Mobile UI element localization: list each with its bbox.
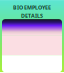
staticText: DETAILS — [21, 12, 43, 19]
staticText: BIO EMPLOYEE — [13, 4, 51, 11]
